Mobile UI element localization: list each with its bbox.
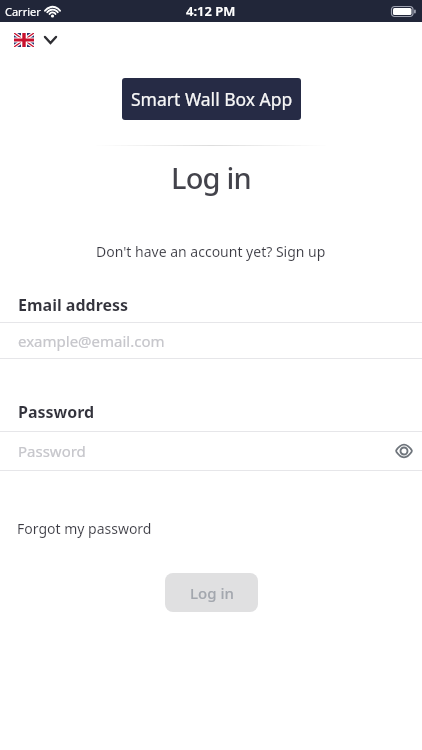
staticText: Log in — [171, 158, 251, 197]
staticText: Password — [18, 401, 95, 423]
staticText: Carrier — [5, 4, 41, 19]
button[interactable]: Log in — [165, 573, 258, 612]
staticText: Smart Wall Box App — [131, 87, 293, 111]
staticText: Log in — [190, 583, 234, 603]
button[interactable]: Forgot my password — [17, 519, 152, 538]
staticText: 4:12 PM — [186, 2, 236, 20]
button[interactable] — [390, 437, 418, 465]
button[interactable] — [14, 33, 57, 47]
staticText: Password — [18, 441, 86, 461]
staticText: example@email.com — [18, 331, 165, 351]
button[interactable]: Don't have an account yet? Sign up — [96, 242, 326, 261]
staticText: Email address — [18, 294, 129, 316]
